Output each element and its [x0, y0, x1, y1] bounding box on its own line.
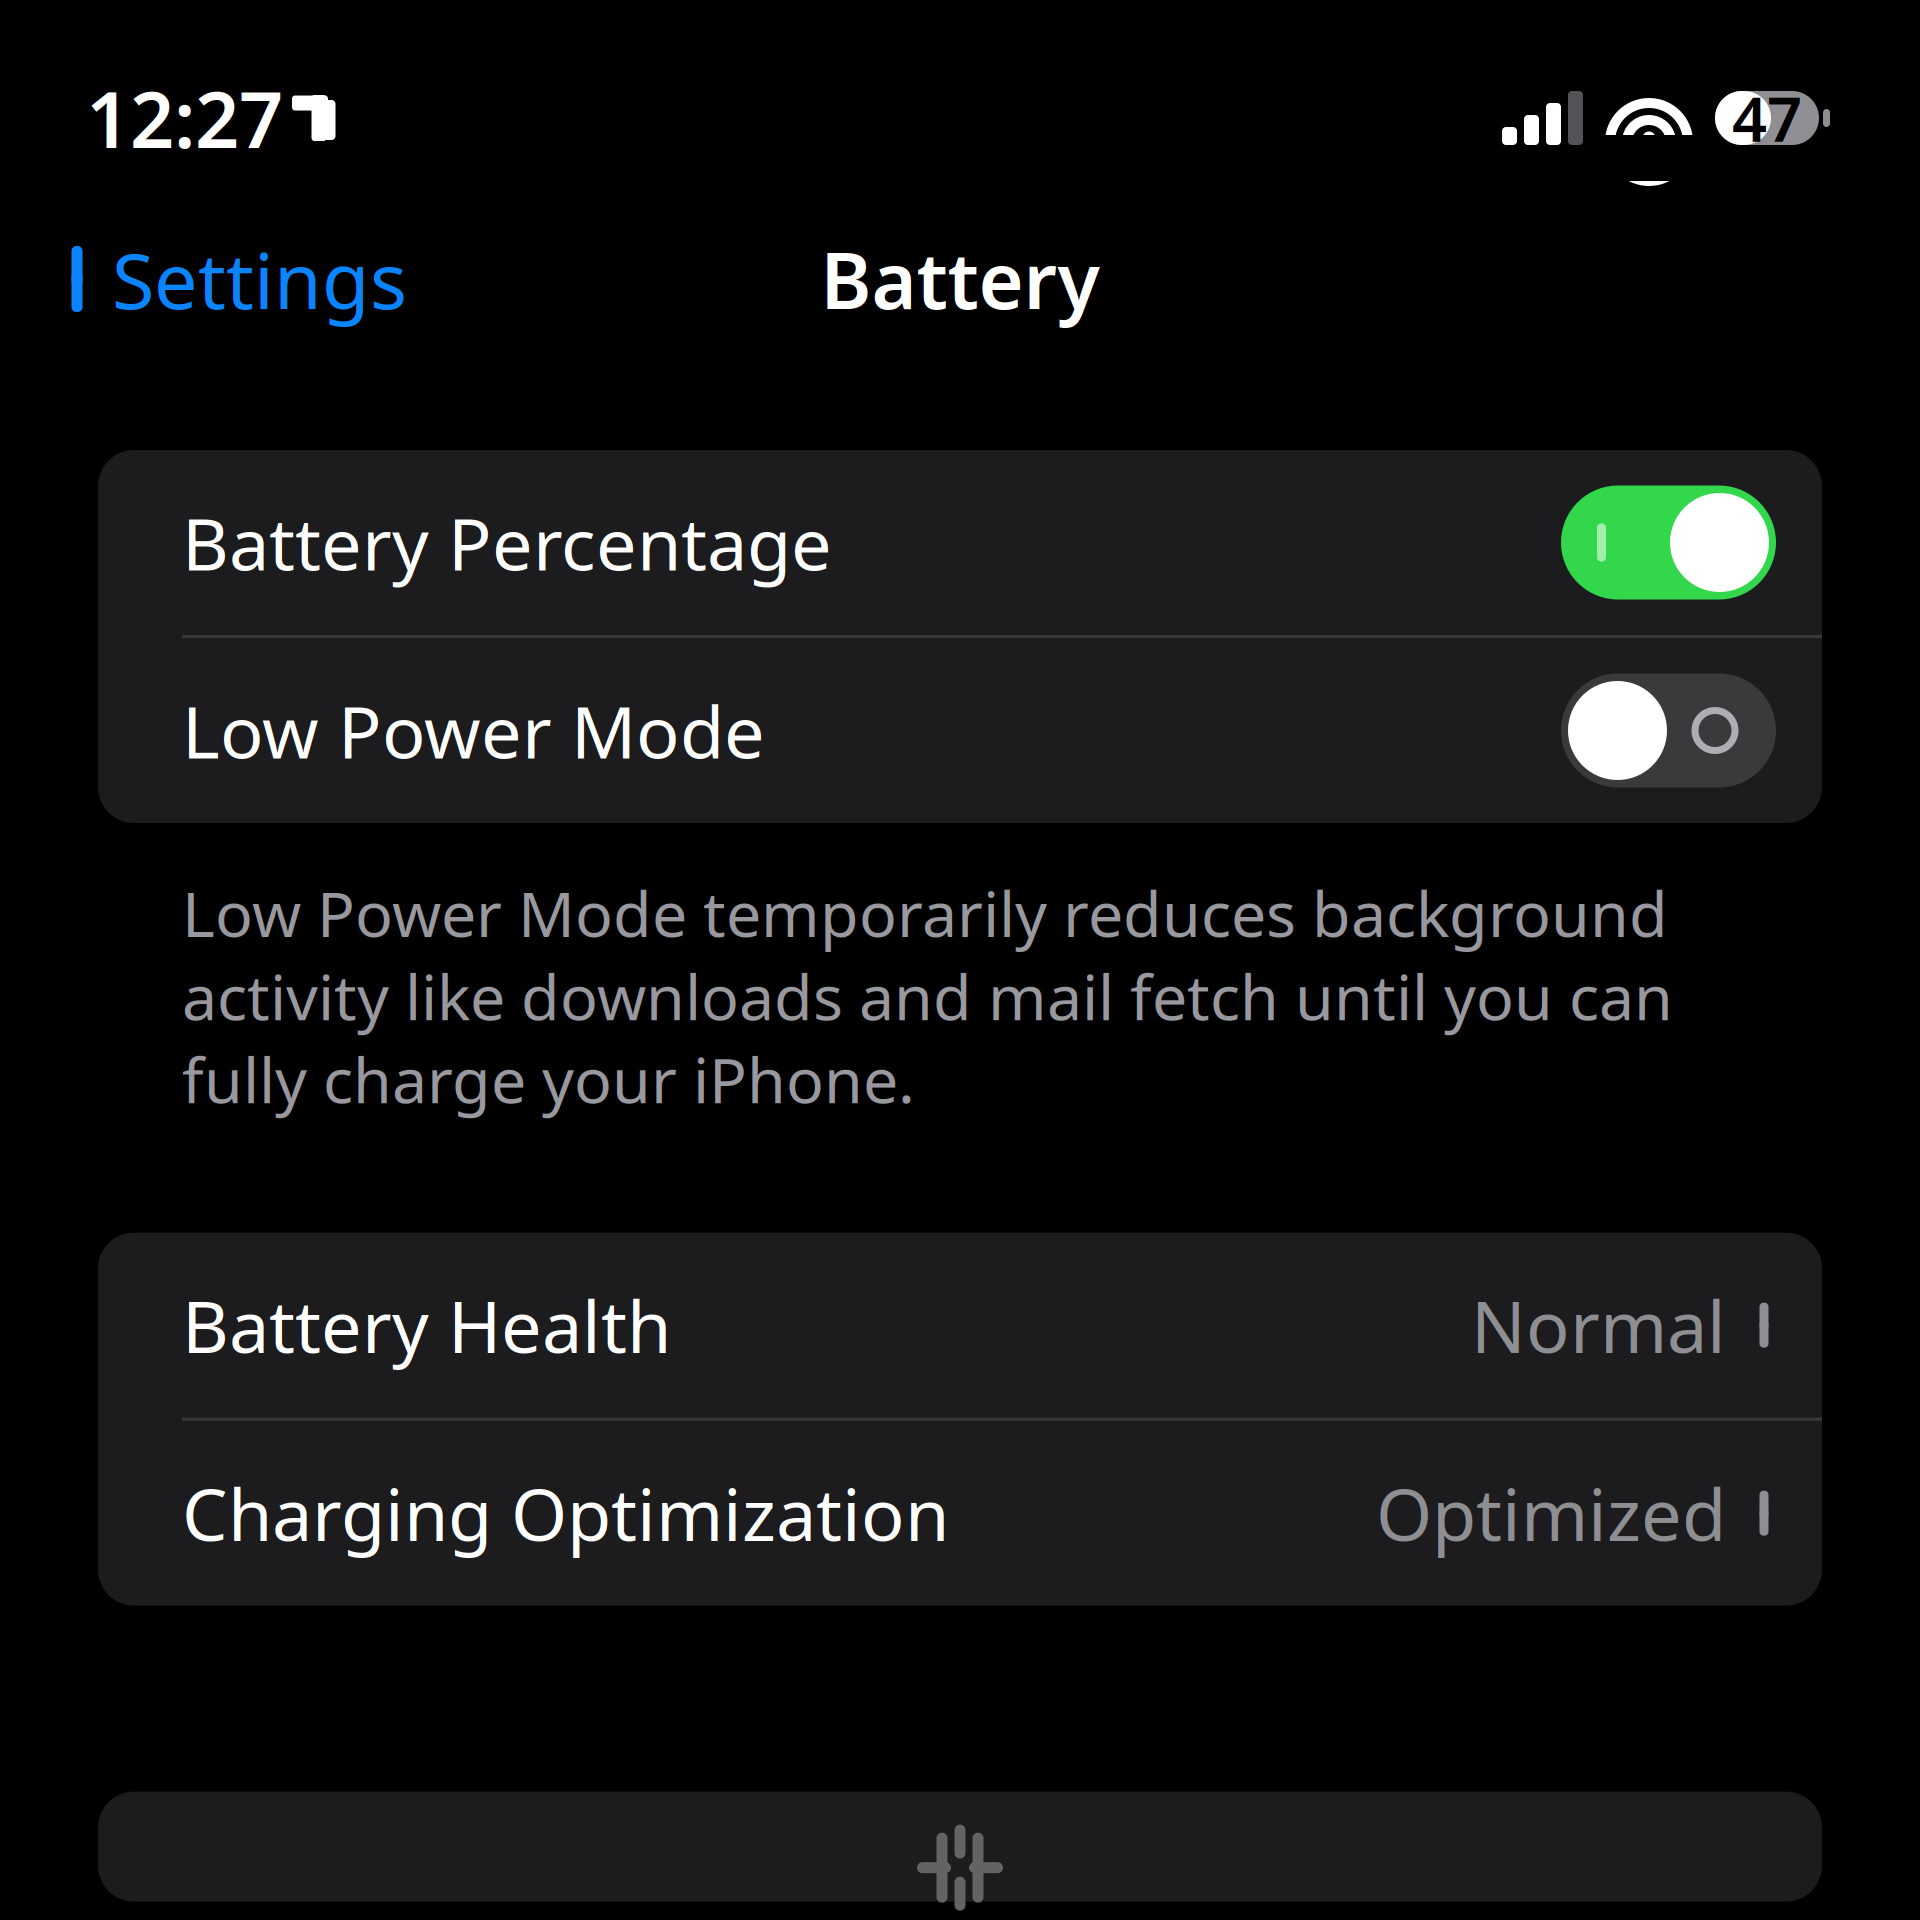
button[interactable]: Charging Optimization	[98, 1421, 1822, 1606]
staticText: Low Power Mode temporarily reduces backg…	[182, 871, 1673, 1121]
staticText: Battery Health	[182, 1277, 671, 1373]
staticText: Optimized	[1376, 1465, 1726, 1561]
button[interactable]: Settings	[48, 212, 415, 346]
staticText: Normal	[1471, 1277, 1726, 1373]
staticText: 12:27	[86, 67, 283, 169]
staticText: Low Power Mode	[182, 683, 765, 778]
button[interactable]: Battery Percentage	[98, 450, 1822, 635]
staticText: 47	[1732, 77, 1802, 159]
staticText: Battery Percentage	[182, 495, 832, 590]
staticText: Settings	[112, 228, 407, 330]
button[interactable]: Battery Health	[98, 1233, 1822, 1418]
staticText: Battery	[820, 228, 1099, 330]
staticText: Charging Optimization	[182, 1465, 949, 1561]
button[interactable]: Low Power Mode	[98, 638, 1822, 823]
